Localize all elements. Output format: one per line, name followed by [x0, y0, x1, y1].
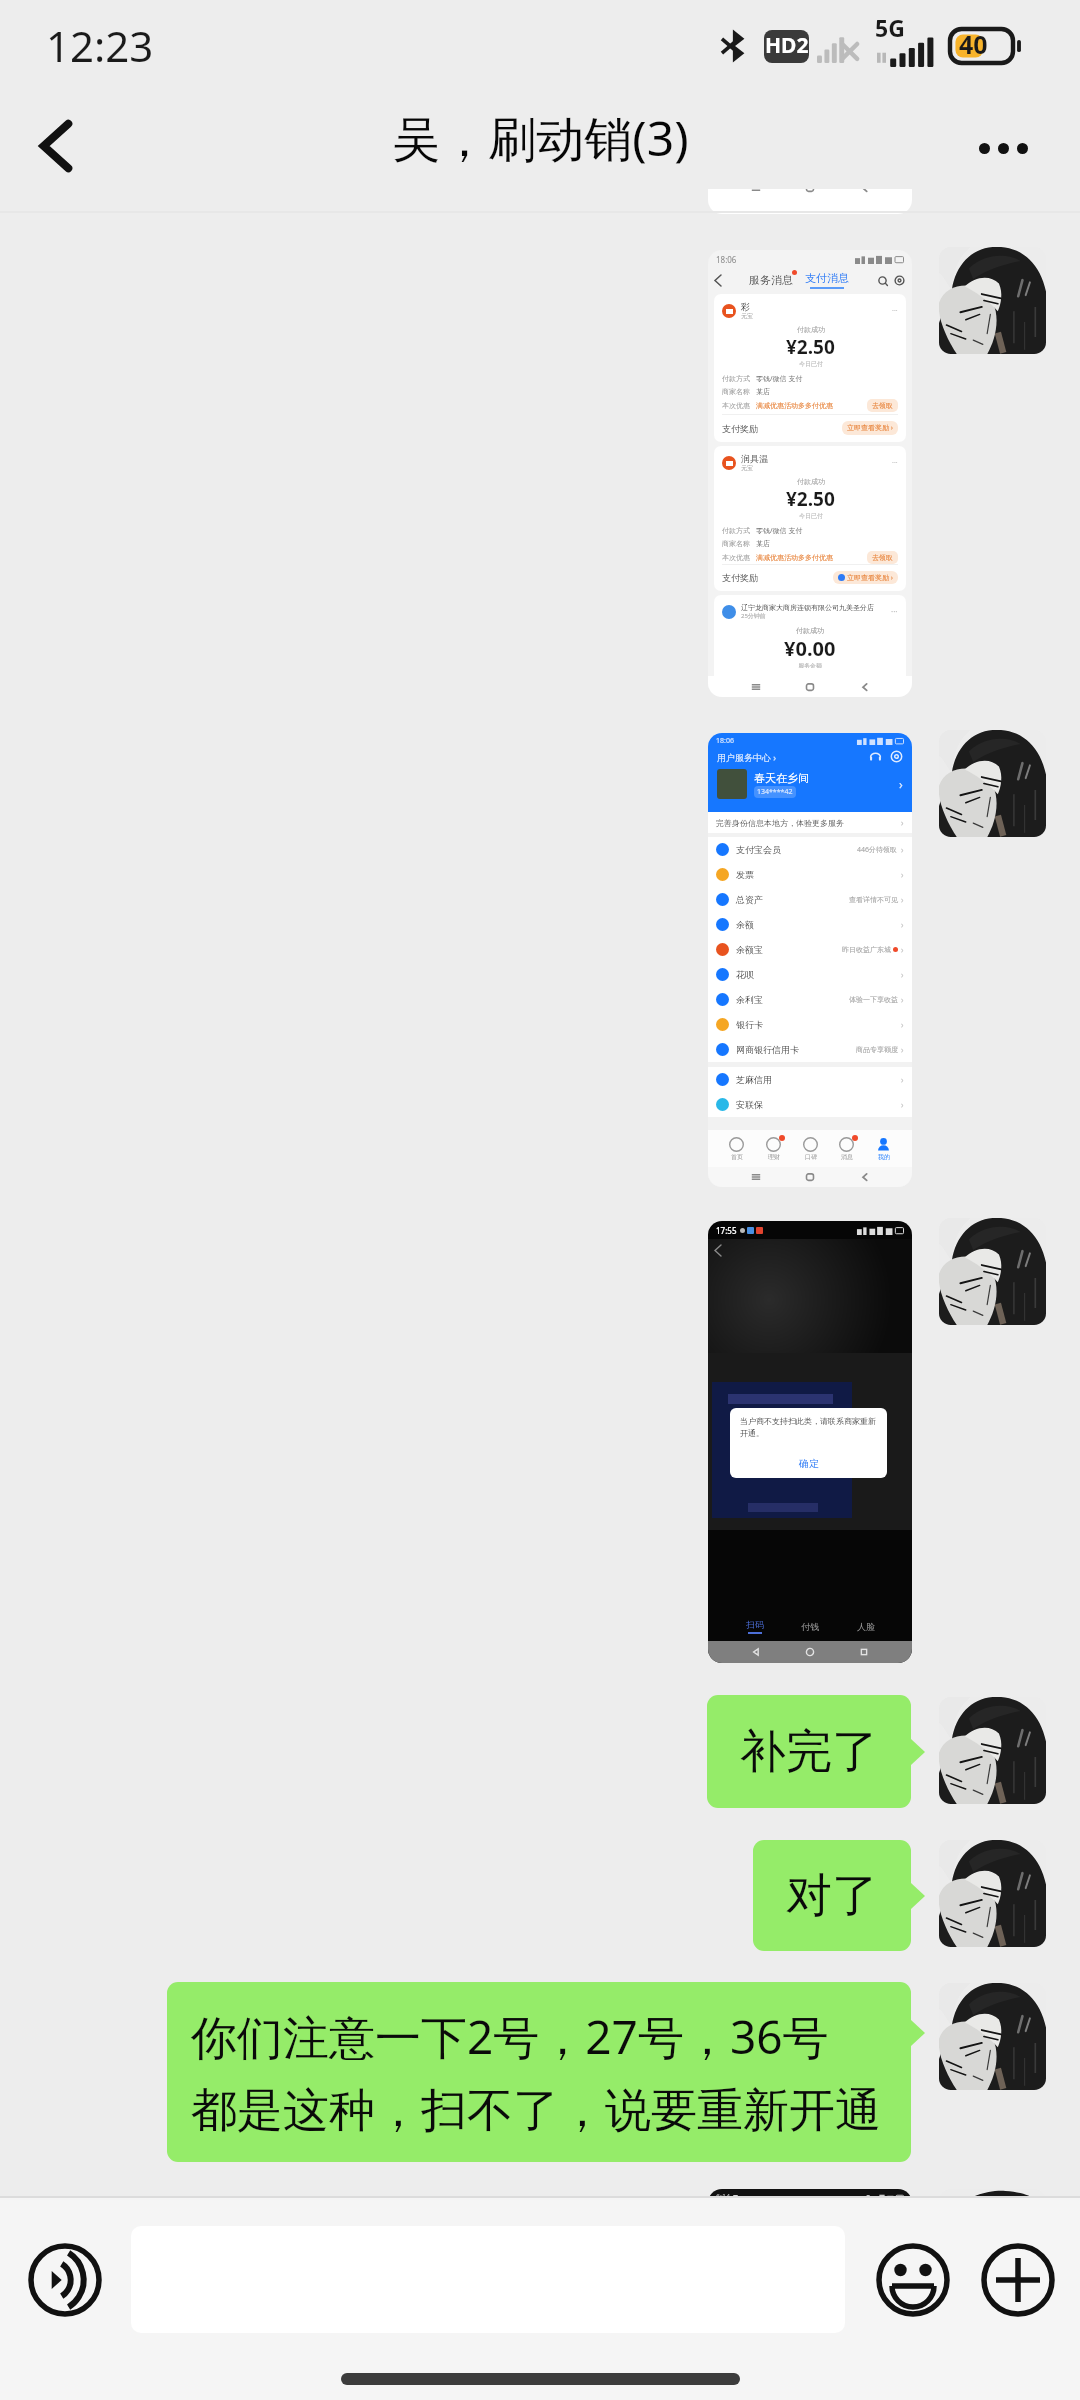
- staticText: 润具温: [741, 453, 768, 464]
- button[interactable]: 银行卡: [716, 1012, 904, 1037]
- staticText: 134****42: [757, 787, 793, 797]
- button[interactable]: 18:06: [708, 250, 912, 697]
- button[interactable]: More functions: [978, 2240, 1058, 2320]
- staticText: 支付奖励: [722, 423, 758, 434]
- button[interactable]: 你们注意一下2号，27号，36号 都是这种，扫不了，说要重新开通: [167, 1982, 911, 2162]
- staticText: 某店: [756, 539, 770, 548]
- staticText: ›: [901, 817, 904, 828]
- staticText: 彩: [741, 301, 750, 312]
- staticText: 付款成功: [796, 626, 824, 635]
- staticText: 辽宁龙商家大商房连锁有限公司九美圣分店: [741, 603, 874, 612]
- staticText: ›: [901, 1044, 904, 1055]
- staticText: 补完了: [740, 1723, 878, 1781]
- button[interactable]: 余额宝: [716, 937, 904, 962]
- staticText: ›: [901, 844, 904, 855]
- staticText: 确定: [799, 1457, 819, 1470]
- staticText: ›: [901, 1099, 904, 1110]
- button[interactable]: 花呗: [716, 962, 904, 987]
- staticText: 18:06: [716, 736, 734, 746]
- staticText: 支付消息: [805, 271, 849, 285]
- staticText: 发票: [736, 869, 754, 880]
- staticText: 首页: [731, 1153, 743, 1161]
- staticText: 40: [959, 27, 988, 61]
- button[interactable]: Contact avatar: [939, 247, 1046, 354]
- staticText: 总资产: [736, 894, 763, 905]
- staticText: 某店: [756, 387, 770, 396]
- button[interactable]: Contact avatar: [939, 1840, 1046, 1947]
- staticText: 商家名称: [722, 539, 750, 548]
- button[interactable]: Back: [0, 96, 112, 211]
- staticText: 零钱/微信 支付: [756, 374, 803, 384]
- staticText: 付款方式: [722, 374, 750, 383]
- staticText: 完善身份信息本地方，体验更多服务: [716, 818, 844, 828]
- staticText: 立即查看奖励 ›: [847, 423, 893, 433]
- staticText: 春天在乡间: [754, 771, 809, 785]
- staticText: 芝麻信用: [736, 1074, 772, 1085]
- staticText: 服务金额: [798, 662, 822, 668]
- staticText: ¥2.50: [786, 486, 835, 512]
- staticText: ›: [901, 994, 904, 1005]
- staticText: 查看详情不可见: [849, 895, 898, 904]
- staticText: 体验一下享收益: [849, 995, 898, 1004]
- staticText: 我的: [878, 1153, 890, 1161]
- staticText: 余额宝: [736, 944, 763, 955]
- button[interactable]: 余额: [716, 912, 904, 937]
- button[interactable]: 发票: [716, 862, 904, 887]
- staticText: 支付奖励: [722, 572, 758, 583]
- staticText: 支付宝会员: [736, 844, 781, 855]
- staticText: 网商银行信用卡: [736, 1044, 799, 1055]
- staticText: 立即查看奖励 ›: [847, 573, 893, 582]
- staticText: HD2: [765, 31, 809, 60]
- staticText: 25分钟前: [741, 612, 766, 620]
- staticText: 服务消息: [749, 273, 793, 287]
- staticText: 去领取: [872, 401, 893, 410]
- staticText: 余额: [736, 919, 754, 930]
- staticText: ›: [901, 869, 904, 880]
- staticText: 扫码: [746, 1619, 764, 1630]
- staticText: 满减优惠活动多多付优惠: [756, 553, 833, 562]
- button[interactable]: More options: [927, 96, 1080, 211]
- staticText: 用户服务中心 ›: [717, 751, 777, 763]
- staticText: 昨日收益广东城: [842, 945, 891, 954]
- staticText: 余利宝: [736, 994, 763, 1005]
- staticText: 付款方式: [722, 526, 750, 535]
- button[interactable]: Contact avatar: [939, 1218, 1046, 1325]
- staticText: ¥0.00: [784, 635, 836, 662]
- button[interactable]: 确定: [740, 1457, 877, 1470]
- button[interactable]: 总资产: [716, 887, 904, 912]
- staticText: 今日已付: [799, 512, 823, 520]
- staticText: 消息: [841, 1153, 853, 1161]
- staticText: 17:55: [716, 1225, 737, 1236]
- staticText: ›: [901, 894, 904, 905]
- staticText: 5G: [875, 12, 905, 43]
- button[interactable]: Emoji: [873, 2240, 953, 2320]
- staticText: 商家名称: [722, 387, 750, 396]
- staticText: 你们注意一下2号，27号，36号 都是这种，扫不了，说要重新开通: [191, 2005, 881, 2139]
- staticText: ›: [901, 944, 904, 955]
- staticText: 付款成功: [797, 325, 825, 334]
- staticText: 满减优惠活动多多付优惠: [756, 401, 833, 410]
- staticText: 本次优惠: [722, 553, 750, 562]
- button[interactable]: 芝麻信用: [716, 1067, 904, 1092]
- button[interactable]: Contact avatar: [939, 730, 1046, 837]
- button[interactable]: 17:55: [708, 1221, 912, 1663]
- button[interactable]: 安联保: [716, 1092, 904, 1117]
- staticText: 18:06: [716, 254, 737, 265]
- button[interactable]: 补完了: [707, 1695, 911, 1808]
- button[interactable]: Contact avatar: [939, 1983, 1046, 2090]
- staticText: 对了: [786, 1867, 878, 1925]
- staticText: ···: [892, 458, 898, 468]
- button[interactable]: Contact avatar: [939, 1697, 1046, 1804]
- button[interactable]: 网商银行信用卡: [716, 1037, 904, 1062]
- staticText: 12:23: [46, 17, 154, 74]
- button[interactable]: Voice input: [25, 2240, 105, 2320]
- staticText: 花呗: [736, 969, 754, 980]
- button[interactable]: 18:06: [708, 733, 912, 1187]
- button[interactable]: 支付宝会员: [716, 837, 904, 862]
- staticText: ›: [901, 919, 904, 930]
- button[interactable]: 对了: [753, 1840, 911, 1951]
- button[interactable]: 余利宝: [716, 987, 904, 1012]
- staticText: 安联保: [736, 1099, 763, 1110]
- staticText: 当户商不支持扫此类，请联系商家重新开通。: [740, 1416, 877, 1438]
